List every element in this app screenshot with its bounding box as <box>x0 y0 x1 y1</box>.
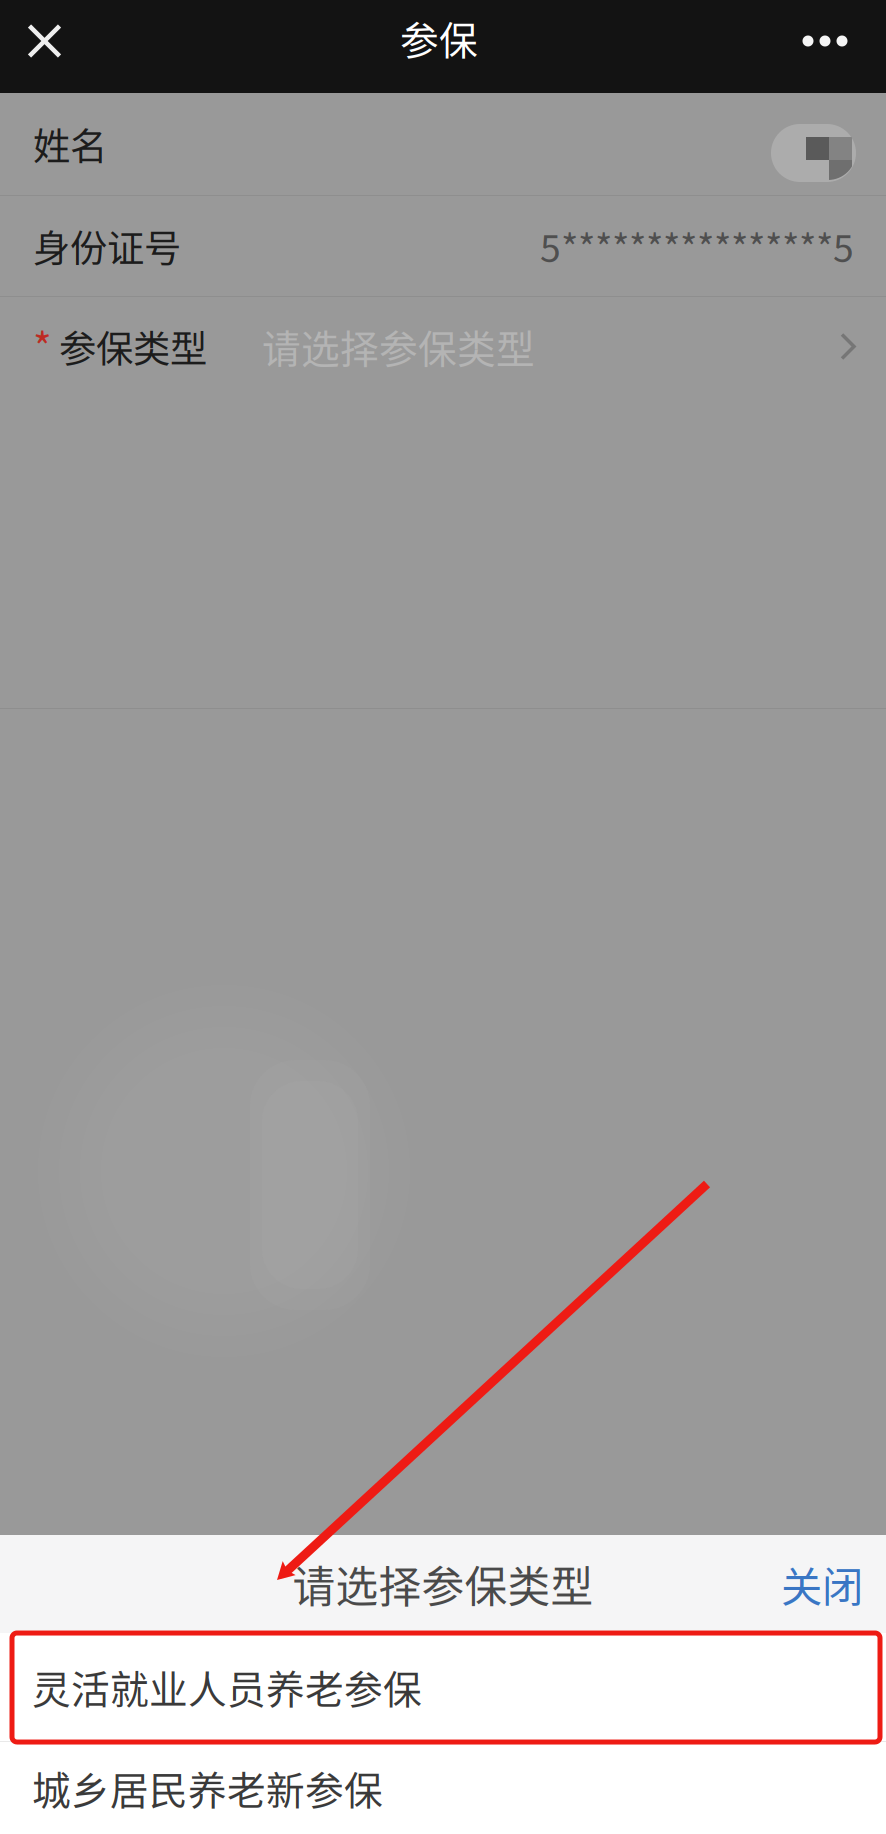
staticText: 参保 <box>400 10 478 66</box>
button[interactable]: 关闭 <box>758 1535 886 1633</box>
staticText: 身份证号 <box>33 219 181 273</box>
staticText: 城乡居民养老新参保 <box>32 1760 383 1816</box>
staticText: * <box>33 316 52 374</box>
staticText: 关闭 <box>781 1554 863 1614</box>
button[interactable]: 城乡居民养老新参保 <box>0 1742 886 1834</box>
button[interactable]: Close <box>0 0 89 82</box>
staticText: 请选择参保类型 <box>262 318 535 374</box>
button[interactable]: * <box>0 297 886 396</box>
staticText: 灵活就业人员养老参保 <box>32 1659 422 1715</box>
staticText: 5****************5 <box>540 219 854 273</box>
button[interactable]: 灵活就业人员养老参保 <box>0 1633 886 1741</box>
staticText: 姓名 <box>33 117 107 171</box>
staticText: 请选择参保类型 <box>292 1553 593 1615</box>
button[interactable]: More options <box>764 0 886 82</box>
staticText: 参保类型 <box>59 319 207 374</box>
